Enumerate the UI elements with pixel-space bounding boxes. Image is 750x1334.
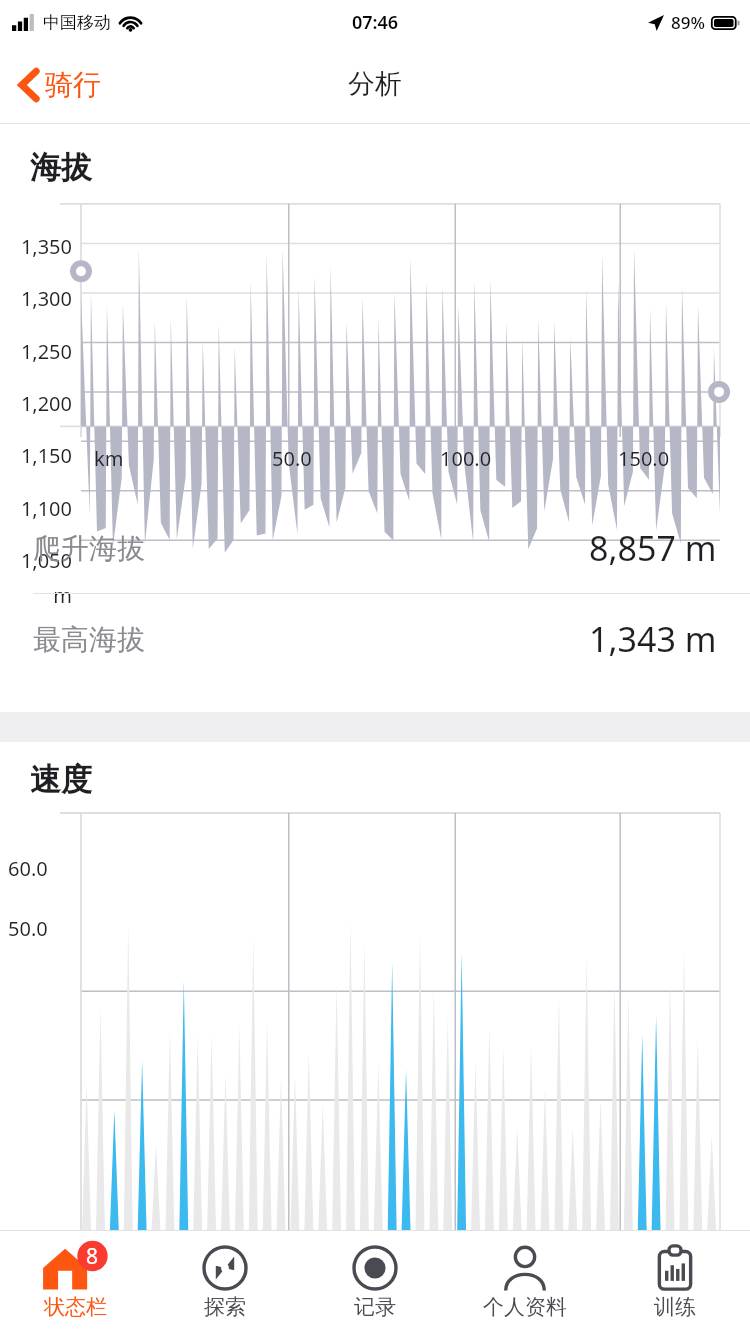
button[interactable]: 记录: [300, 1230, 450, 1334]
staticText: 60.0: [8, 855, 48, 882]
other: 探索: [202, 1245, 248, 1291]
staticText: 骑行: [45, 67, 101, 102]
staticText: 1,350: [0, 233, 72, 260]
staticText: 探索: [204, 1294, 246, 1320]
staticText: 89%: [671, 11, 705, 34]
staticText: 8: [86, 1242, 99, 1271]
staticText: 记录: [354, 1294, 396, 1320]
staticText: 分析: [348, 67, 402, 101]
staticText: 50.0: [8, 915, 48, 942]
staticText: 1,200: [0, 390, 72, 417]
staticText: 1,100: [0, 495, 72, 522]
staticText: km: [94, 445, 124, 472]
button[interactable]: 状态栏: [0, 1230, 150, 1334]
button[interactable]: 个人资料: [450, 1230, 600, 1334]
other: 记录: [352, 1245, 398, 1291]
staticText: 个人资料: [483, 1294, 567, 1320]
staticText: 速度: [30, 760, 92, 799]
staticText: 1,150: [0, 442, 72, 469]
staticText: 1,300: [0, 285, 72, 312]
staticText: m: [0, 582, 72, 609]
staticText: 1,050: [0, 547, 72, 574]
staticText: 中国移动: [43, 12, 111, 33]
other: 状态栏: [37, 1245, 113, 1291]
staticText: 150.0: [618, 445, 670, 472]
staticText: 07:46: [352, 10, 399, 35]
staticText: 最高海拔: [33, 622, 145, 657]
other: 个人资料: [502, 1245, 548, 1291]
staticText: 训练: [654, 1294, 696, 1320]
staticText: 50.0: [272, 445, 312, 472]
button[interactable]: 最高海拔: [0, 594, 750, 684]
staticText: 8,857 m: [589, 525, 717, 571]
button[interactable]: 爬升海拔: [0, 503, 750, 593]
button[interactable]: 探索: [150, 1230, 300, 1334]
staticText: 状态栏: [44, 1294, 107, 1320]
staticText: 100.0: [440, 445, 492, 472]
button[interactable]: 骑行: [14, 59, 107, 110]
staticText: 海拔: [30, 148, 92, 187]
other: 训练: [652, 1245, 698, 1291]
button[interactable]: 训练: [600, 1230, 750, 1334]
staticText: 爬升海拔: [33, 531, 145, 566]
staticText: 1,250: [0, 338, 72, 365]
staticText: 1,343 m: [589, 616, 717, 662]
